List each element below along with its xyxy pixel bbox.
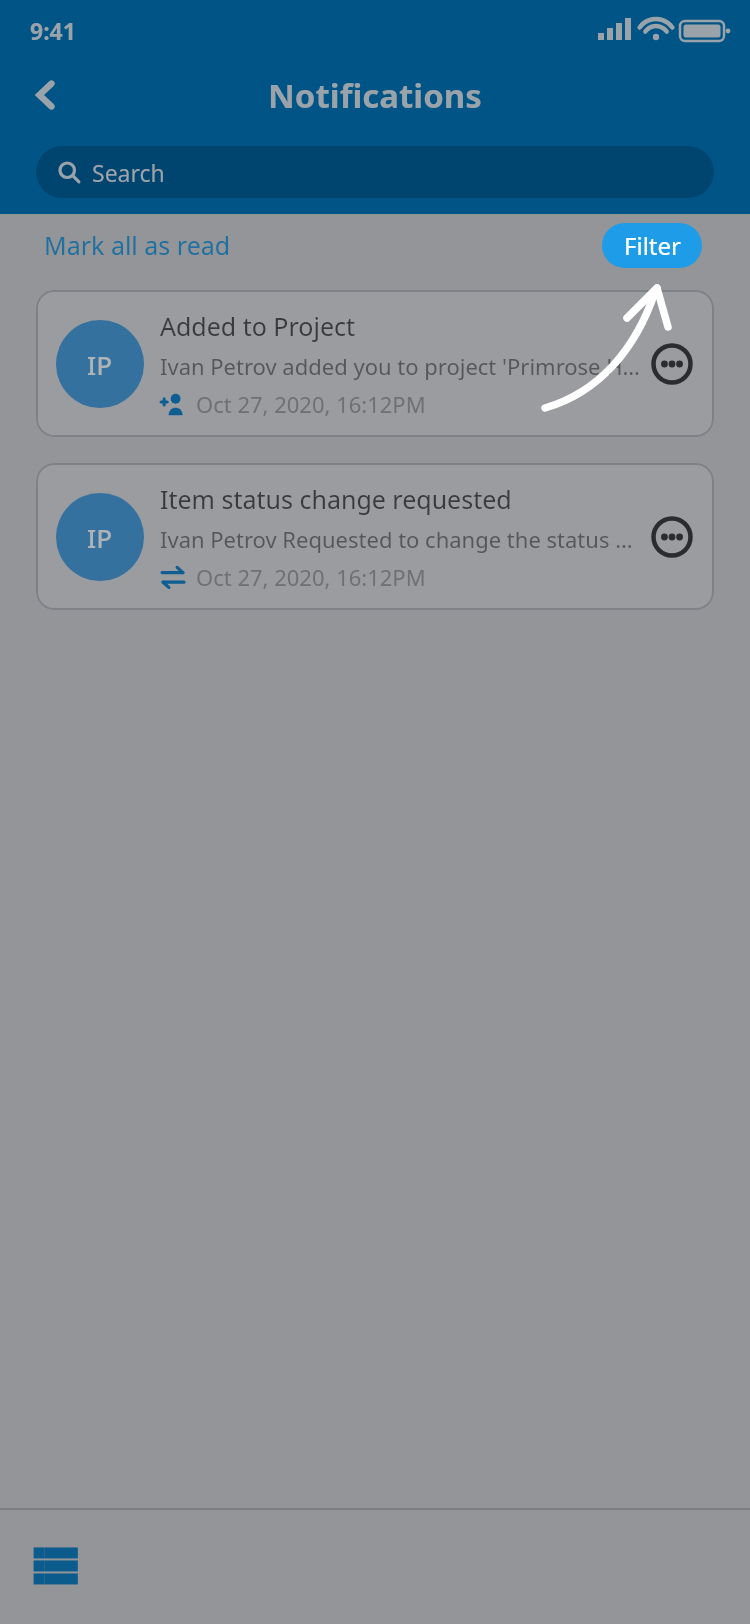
button[interactable]: More options xyxy=(650,515,694,559)
staticText: 9:41 xyxy=(30,15,76,46)
staticText: Filter xyxy=(624,229,681,262)
staticText: Ivan Petrov Requested to change the stat… xyxy=(160,524,640,554)
staticText: Search xyxy=(92,157,165,188)
button[interactable]: IP xyxy=(36,463,714,610)
button[interactable]: Filter xyxy=(602,223,702,268)
button[interactable]: IP xyxy=(36,290,714,437)
button[interactable]: Mark all as read xyxy=(44,228,231,262)
staticText: Oct 27, 2020, 16:12PM xyxy=(196,389,426,419)
staticText: IP xyxy=(87,347,113,382)
button[interactable]: Search xyxy=(36,146,714,198)
staticText: Oct 27, 2020, 16:12PM xyxy=(196,562,426,592)
staticText: Item status change requested xyxy=(160,482,512,516)
button[interactable]: More options xyxy=(650,342,694,386)
staticText: Mark all as read xyxy=(44,228,231,262)
staticText: IP xyxy=(87,520,113,555)
staticText: Ivan Petrov added you to project 'Primro… xyxy=(160,351,640,381)
button[interactable]: Back xyxy=(18,67,74,123)
button[interactable]: Menu xyxy=(22,1532,92,1602)
staticText: Notifications xyxy=(268,73,482,118)
staticText: Added to Project xyxy=(160,309,356,343)
